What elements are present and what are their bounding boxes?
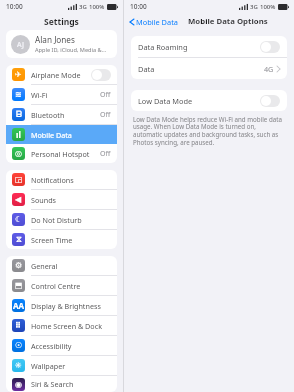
button[interactable]: ᗷ [6, 105, 117, 124]
button[interactable]: Data Roaming [260, 41, 280, 53]
staticText: ⚙ [15, 261, 23, 270]
button[interactable]: ⬒ [6, 276, 117, 295]
staticText: Off [100, 149, 111, 159]
staticText: ⧖ [16, 236, 22, 244]
staticText: Mobile Data Options [188, 16, 268, 27]
staticText: 3G [79, 3, 87, 11]
staticText: ᗷ [16, 111, 22, 119]
staticText: Settings [44, 16, 79, 28]
staticText: ◲ [15, 175, 23, 184]
staticText: ✳ [15, 361, 22, 370]
staticText: 10:00 [6, 2, 23, 11]
button[interactable]: ⚙ [6, 256, 117, 275]
staticText: 4G [264, 64, 274, 74]
staticText: ◉ [15, 380, 22, 389]
staticText: ☾ [15, 215, 23, 224]
staticText: Control Centre [31, 281, 111, 291]
button[interactable]: ıl [6, 125, 117, 144]
button[interactable]: ⠿ [6, 316, 117, 335]
staticText: Sounds [31, 195, 111, 205]
staticText: Alan Jones [35, 34, 75, 45]
button[interactable]: ◲ [6, 170, 117, 189]
button[interactable]: ☉ [6, 336, 117, 355]
staticText: Wallpaper [31, 361, 111, 371]
staticText: Airplane Mode [31, 70, 91, 80]
staticText: 10:00 [130, 2, 147, 11]
staticText: AA [13, 300, 25, 311]
button[interactable]: ⧖ [6, 230, 117, 249]
staticText: Accessibility [31, 341, 111, 351]
staticText: Bluetooth [31, 110, 100, 120]
staticText: Notifications [31, 175, 111, 185]
staticText: ⠿ [15, 321, 22, 330]
staticText: Off [100, 110, 111, 120]
staticText: Data [138, 64, 264, 74]
staticText: Siri & Search [31, 379, 111, 389]
staticText: ıl [16, 129, 21, 140]
button[interactable]: Data Roaming [131, 36, 287, 57]
button[interactable]: ✳ [6, 356, 117, 375]
staticText: ≋ [15, 90, 22, 99]
button[interactable]: ◉ [6, 376, 117, 392]
staticText: 100% [89, 3, 105, 11]
button[interactable]: AA [6, 296, 117, 315]
staticText: Mobile Data [136, 17, 178, 27]
button[interactable]: Mobile Data [129, 15, 179, 29]
staticText: General [31, 261, 111, 271]
staticText: Low Data Mode [138, 96, 260, 106]
staticText: ☉ [15, 341, 23, 350]
button[interactable]: ◀ [6, 190, 117, 209]
button[interactable]: ☾ [6, 210, 117, 229]
staticText: 3G [250, 3, 258, 11]
staticText: Wi-Fi [31, 90, 100, 100]
button[interactable]: ≋ [6, 85, 117, 104]
staticText: Display & Brightness [31, 301, 111, 311]
staticText: Mobile Data [31, 130, 111, 140]
staticText: Screen Time [31, 235, 111, 245]
staticText: Personal Hotspot [31, 149, 100, 159]
staticText: Low Data Mode helps reduce Wi-Fi and mob… [133, 115, 285, 147]
button[interactable]: Data [131, 58, 287, 79]
button[interactable]: ◎ [6, 144, 117, 163]
staticText: Do Not Disturb [31, 215, 111, 225]
button[interactable]: AJ [6, 30, 117, 58]
button[interactable]: ✈ [6, 65, 117, 84]
staticText: 100% [260, 3, 276, 11]
staticText: Home Screen & Dock [31, 321, 111, 331]
staticText: ⬒ [15, 281, 23, 290]
staticText: Data Roaming [138, 42, 260, 52]
staticText: ◎ [15, 149, 22, 158]
staticText: Apple ID, iCloud, Media &… [35, 46, 107, 54]
staticText: ✈ [15, 70, 22, 79]
button[interactable]: Airplane Mode [91, 69, 111, 81]
staticText: Off [100, 90, 111, 100]
staticText: ◀ [15, 195, 22, 204]
button[interactable]: Low Data Mode [131, 90, 287, 111]
button[interactable]: Low Data Mode [260, 95, 280, 107]
staticText: AJ [17, 40, 24, 50]
